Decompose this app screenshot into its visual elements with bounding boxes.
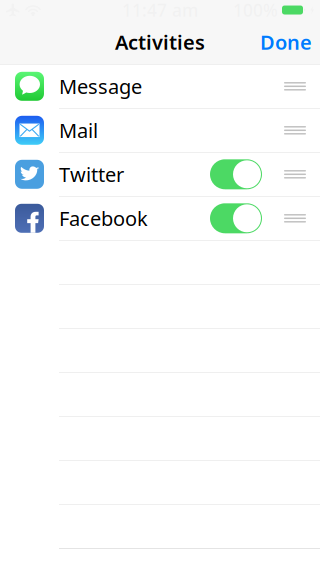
- button[interactable]: Facebook: [0, 197, 320, 241]
- staticText: Mail: [59, 117, 98, 144]
- staticText: Facebook: [59, 205, 148, 232]
- staticText: Twitter: [59, 161, 124, 188]
- button[interactable]: Message: [0, 65, 320, 109]
- staticText: Message: [59, 73, 142, 100]
- button[interactable]: Mail: [0, 109, 320, 153]
- button[interactable]: Twitter: [0, 153, 320, 197]
- staticText: Activities: [115, 29, 205, 55]
- staticText: Done: [260, 29, 312, 55]
- button[interactable]: Done: [246, 21, 320, 63]
